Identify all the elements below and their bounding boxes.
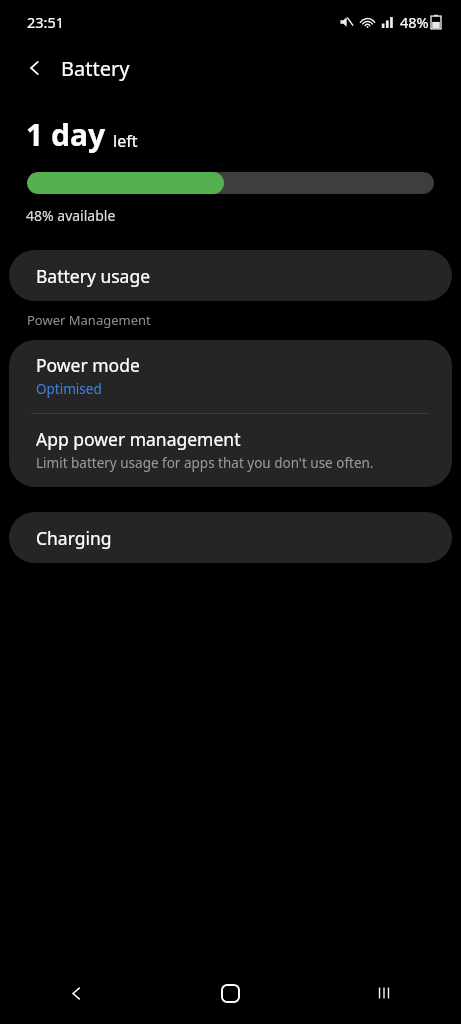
button[interactable]: Charging [9, 512, 452, 563]
staticText: Power Management [27, 311, 151, 329]
staticText: 1 day [26, 114, 106, 155]
button[interactable]: Recents [307, 962, 461, 1024]
staticText: Limit battery usage for apps that you do… [36, 454, 374, 472]
staticText: left [113, 130, 138, 152]
staticText: Charging [36, 526, 112, 550]
staticText: Optimised [36, 380, 102, 398]
staticText: Battery [61, 55, 130, 82]
button[interactable]: Power mode [9, 340, 452, 413]
staticText: 48% [400, 12, 429, 32]
button[interactable]: Battery usage [9, 250, 452, 301]
button[interactable]: Back [18, 51, 52, 85]
staticText: 48% available [26, 206, 116, 225]
button[interactable]: Home [153, 962, 307, 1024]
staticText: 23:51 [27, 12, 65, 32]
staticText: Power mode [36, 353, 140, 377]
staticText: Battery usage [36, 264, 151, 288]
button[interactable]: App power management [9, 414, 452, 487]
staticText: App power management [36, 427, 241, 451]
button[interactable]: Back [0, 962, 153, 1024]
